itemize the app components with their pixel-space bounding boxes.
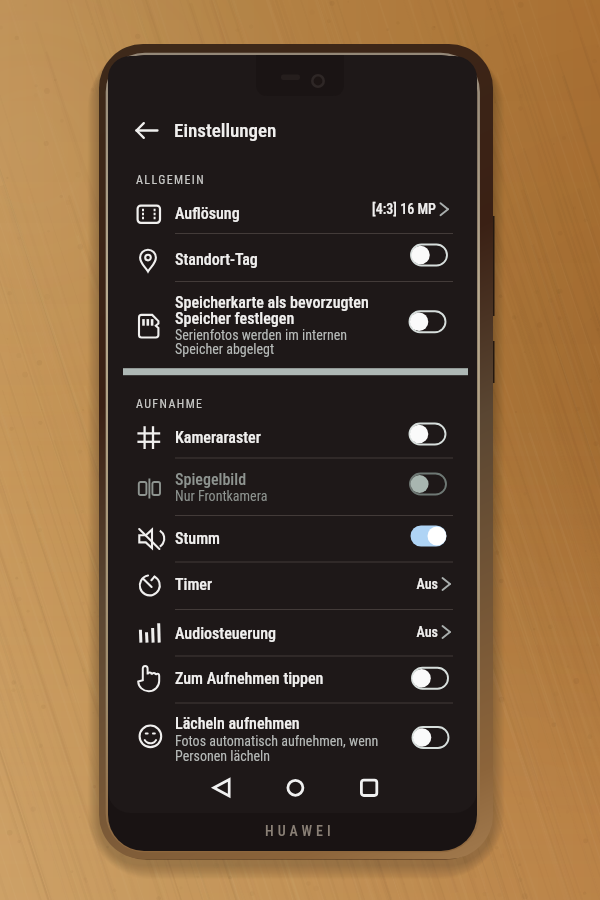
staticText: Spiegelbild bbox=[175, 470, 247, 489]
button[interactable]: Kameraraster bbox=[108, 412, 477, 458]
button[interactable]: Zum Aufnehmen tippen bbox=[108, 656, 477, 703]
button[interactable]: Zurück bbox=[196, 770, 248, 806]
button[interactable]: Audiosteuerung bbox=[108, 609, 477, 656]
staticText: Kameraraster bbox=[175, 428, 261, 447]
staticText: Zum Aufnehmen tippen bbox=[175, 669, 324, 688]
staticText: Fotos automatisch aufnehmen, wenn bbox=[175, 733, 379, 749]
staticText: Speicher abgelegt bbox=[175, 341, 275, 357]
staticText: Timer bbox=[175, 575, 213, 594]
staticText: Personen lächeln bbox=[175, 748, 270, 764]
button[interactable]: Standort-Tag bbox=[108, 234, 477, 282]
staticText: Stumm bbox=[175, 529, 221, 548]
button[interactable]: Lächeln aufnehmen bbox=[108, 703, 477, 765]
button[interactable]: Speicherkarte als bevorzugten bbox=[108, 282, 477, 366]
staticText: Lächeln aufnehmen bbox=[175, 714, 300, 733]
staticText: Aus bbox=[398, 624, 438, 642]
staticText: Einstellungen bbox=[174, 119, 277, 141]
button[interactable]: Spiegelbild bbox=[108, 458, 477, 515]
staticText: Standort-Tag bbox=[175, 250, 258, 269]
staticText: HUAWEI bbox=[265, 823, 335, 839]
staticText: Auflösung bbox=[175, 204, 240, 223]
staticText: [4:3] 16 MP bbox=[356, 201, 436, 219]
button[interactable]: Zurück bbox=[128, 112, 166, 150]
staticText: Nur Frontkamera bbox=[175, 488, 268, 504]
staticText: Aus bbox=[398, 576, 438, 594]
button[interactable]: Timer bbox=[108, 562, 477, 609]
staticText: Serienfotos werden im internen bbox=[175, 327, 348, 343]
staticText: Speicher festlegen bbox=[175, 309, 295, 328]
staticText: AUFNAHME bbox=[136, 397, 204, 411]
button[interactable]: Übersicht bbox=[343, 770, 395, 806]
button[interactable]: Auflösung bbox=[108, 192, 477, 234]
staticText: ALLGEMEIN bbox=[136, 173, 206, 187]
button[interactable]: Stumm bbox=[108, 515, 477, 562]
staticText: Audiosteuerung bbox=[175, 624, 276, 643]
staticText: Speicherkarte als bevorzugten bbox=[175, 293, 369, 312]
button[interactable]: Startbildschirm bbox=[270, 770, 322, 806]
